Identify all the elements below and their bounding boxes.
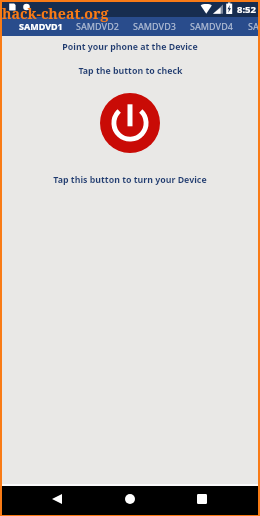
staticText: Point your phone at the Device xyxy=(62,41,198,53)
staticText: SAMDVD2 xyxy=(76,20,119,32)
staticText: SAMDVD5 xyxy=(248,20,258,32)
staticText: SAMDVD1 xyxy=(19,20,63,32)
button[interactable]: Back xyxy=(46,488,68,510)
staticText: hack-cheat.org xyxy=(2,4,109,23)
button[interactable]: SAMDVD3 xyxy=(126,17,183,36)
button[interactable]: Power xyxy=(100,93,160,153)
button[interactable]: Recents xyxy=(191,488,213,510)
staticText: SAMDVD3 xyxy=(133,20,176,32)
button[interactable]: SAMDVD1 xyxy=(12,17,69,36)
staticText: Tap this button to turn your Device xyxy=(53,174,207,186)
button[interactable]: Home xyxy=(119,488,141,510)
staticText: 8:52 xyxy=(237,3,256,16)
button[interactable]: SAMDVD2 xyxy=(69,17,126,36)
button[interactable]: SAMDVD5 xyxy=(241,17,258,36)
button[interactable]: SAMDVD4 xyxy=(183,17,240,36)
staticText: Tap the button to check xyxy=(78,65,183,77)
staticText: SAMDVD4 xyxy=(190,20,233,32)
